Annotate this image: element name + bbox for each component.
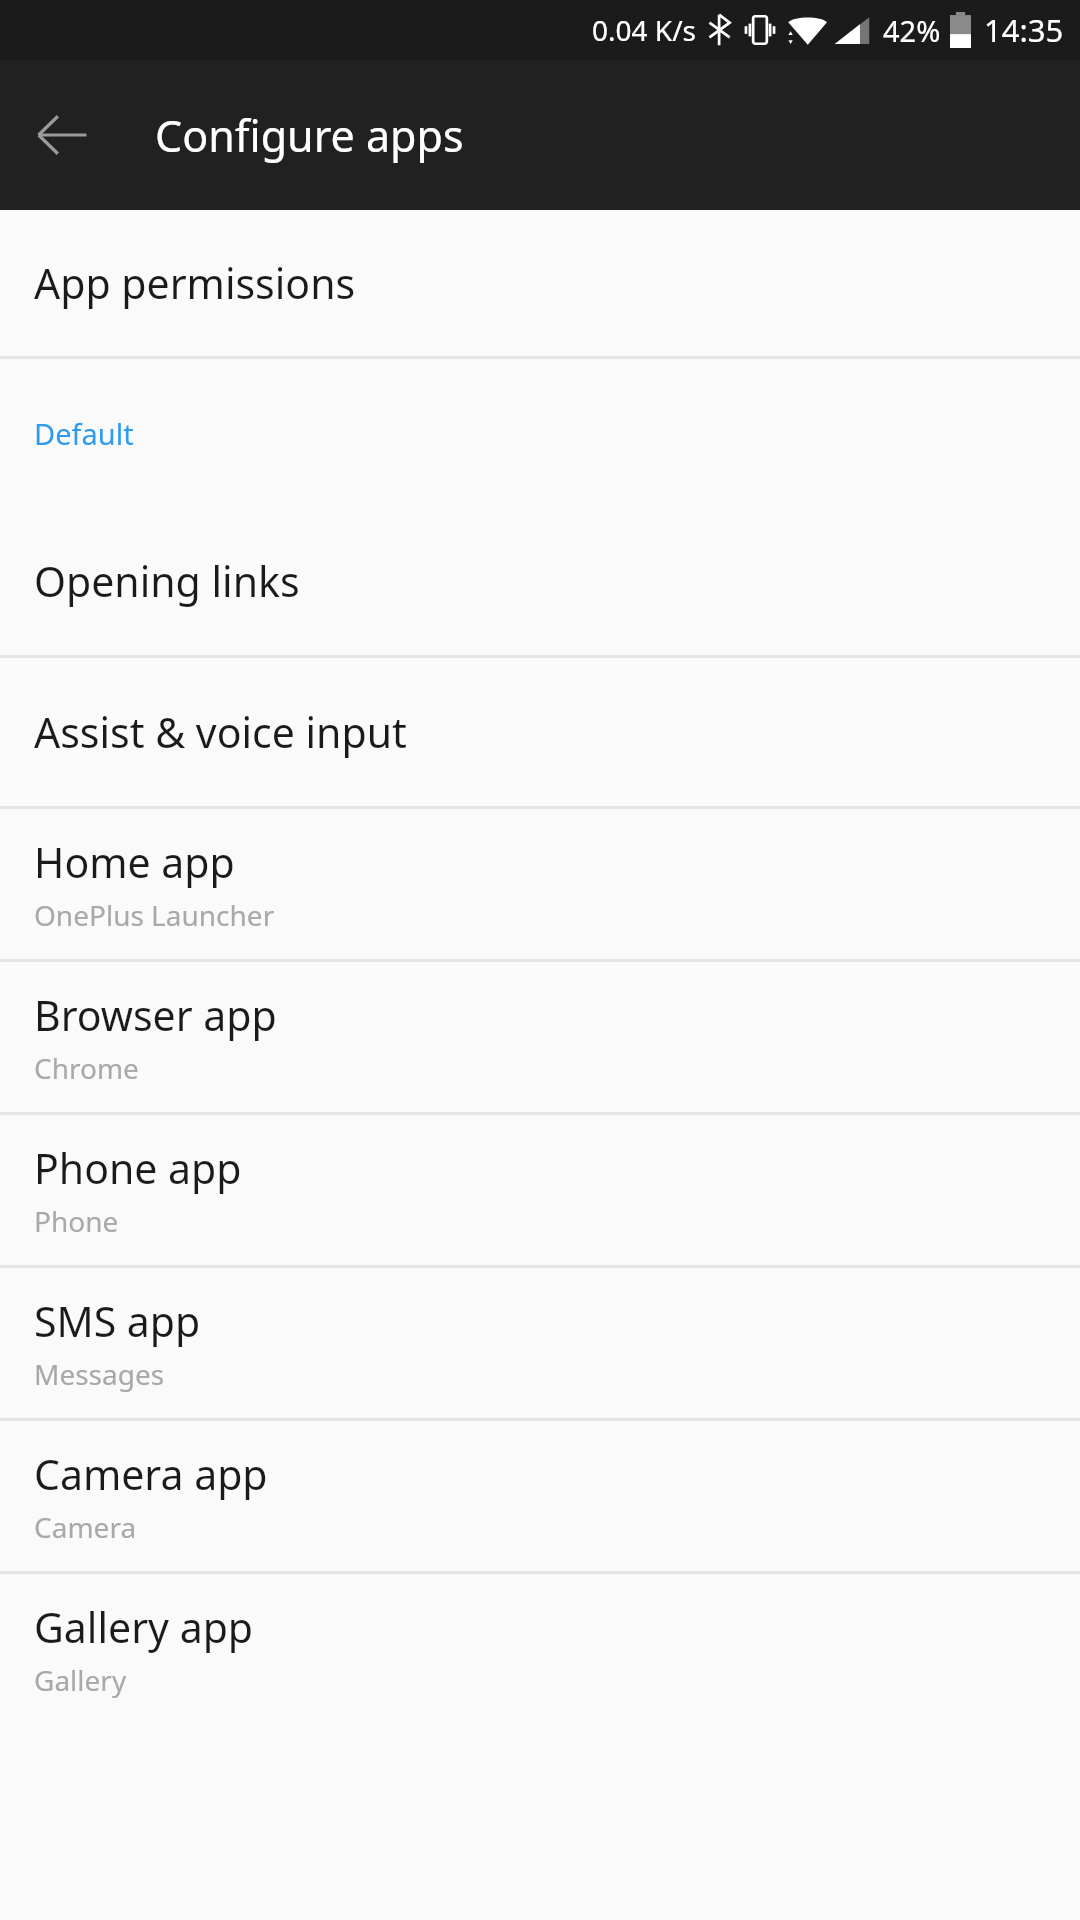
button[interactable]: App permissions bbox=[0, 210, 1080, 356]
staticText: Default bbox=[34, 414, 134, 453]
staticText: Gallery app bbox=[34, 1599, 254, 1655]
staticText: Assist & voice input bbox=[34, 704, 407, 760]
button[interactable]: Phone app bbox=[0, 1115, 1080, 1265]
staticText: Chrome bbox=[34, 1049, 139, 1087]
staticText: Home app bbox=[34, 834, 235, 890]
staticText: App permissions bbox=[34, 255, 356, 311]
staticText: Camera bbox=[34, 1508, 137, 1546]
staticText: Phone bbox=[34, 1202, 119, 1240]
button[interactable]: Browser app bbox=[0, 962, 1080, 1112]
button[interactable]: Back bbox=[14, 87, 110, 183]
staticText: Opening links bbox=[34, 553, 300, 609]
staticText: Browser app bbox=[34, 987, 277, 1043]
staticText: 42% bbox=[883, 11, 941, 50]
staticText: Messages bbox=[34, 1355, 165, 1393]
button[interactable]: Opening links bbox=[0, 507, 1080, 655]
button[interactable]: Assist & voice input bbox=[0, 658, 1080, 806]
button[interactable]: SMS app bbox=[0, 1268, 1080, 1418]
button[interactable]: Camera app bbox=[0, 1421, 1080, 1571]
button[interactable]: Home app bbox=[0, 809, 1080, 959]
staticText: OnePlus Launcher bbox=[34, 896, 275, 934]
staticText: Phone app bbox=[34, 1140, 242, 1196]
button[interactable]: Gallery app bbox=[0, 1574, 1080, 1724]
staticText: SMS app bbox=[34, 1293, 201, 1349]
staticText: Gallery bbox=[34, 1661, 127, 1699]
staticText: 0.04 K/s bbox=[592, 11, 696, 49]
staticText: Camera app bbox=[34, 1446, 268, 1502]
staticText: Configure apps bbox=[155, 106, 464, 165]
staticText: 14:35 bbox=[984, 9, 1064, 51]
